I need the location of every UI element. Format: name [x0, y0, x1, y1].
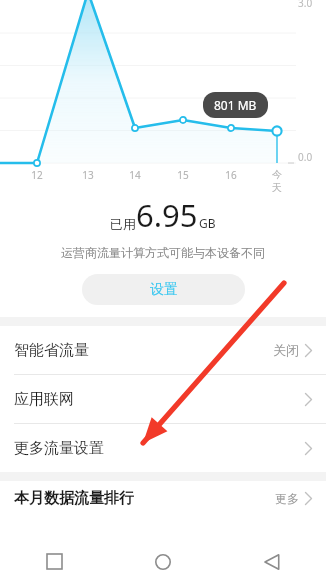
staticText: 更多流量设置	[14, 439, 104, 458]
staticText: 15	[176, 168, 190, 182]
staticText: 本月数据流量排行	[14, 489, 134, 508]
staticText: 更多	[275, 491, 299, 506]
staticText: 3.0	[298, 0, 313, 10]
staticText: 13	[81, 168, 95, 182]
staticText: 关闭	[273, 342, 299, 358]
button[interactable]: 应用联网	[0, 375, 326, 423]
staticText: 16	[224, 168, 238, 182]
button[interactable]: 智能省流量	[0, 326, 326, 374]
staticText: 6.95	[136, 194, 198, 236]
button[interactable]: Recent apps	[0, 540, 108, 583]
staticText: 设置	[150, 281, 178, 299]
staticText: 14	[128, 168, 142, 182]
staticText: 已用	[110, 216, 136, 232]
staticText: 今天	[270, 168, 284, 194]
staticText: 801 MB	[214, 97, 257, 113]
button[interactable]: 本月数据流量排行	[0, 481, 326, 515]
button[interactable]: 设置	[82, 274, 245, 305]
staticText: GB	[199, 215, 216, 231]
button[interactable]: Home	[108, 540, 217, 583]
staticText: 运营商流量计算方式可能与本设备不同	[0, 245, 326, 260]
staticText: 0.0	[298, 150, 313, 164]
staticText: 12	[30, 168, 44, 182]
button[interactable]: 更多流量设置	[0, 424, 326, 472]
staticText: 智能省流量	[14, 341, 89, 360]
button[interactable]: Back	[217, 540, 326, 583]
staticText: 应用联网	[14, 390, 74, 409]
